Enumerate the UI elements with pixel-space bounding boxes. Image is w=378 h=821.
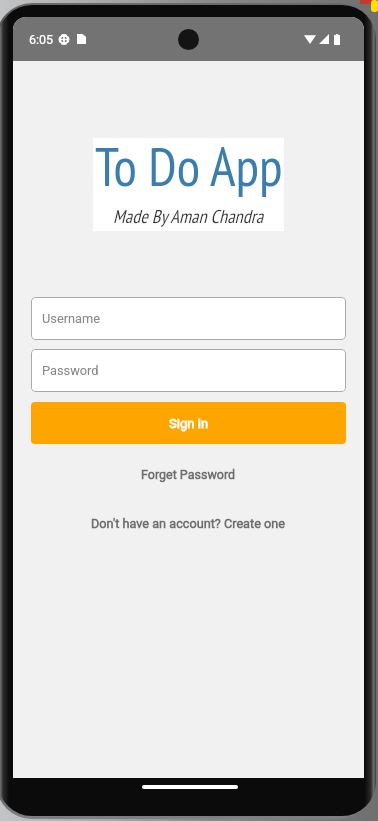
staticText: Password <box>42 363 99 378</box>
staticText: Made By Aman Chandra <box>113 204 264 228</box>
staticText: Username <box>42 311 101 326</box>
staticText: Don't have an account? Create one <box>91 516 286 531</box>
staticText: Forget Password <box>141 467 236 482</box>
staticText: To Do App <box>95 131 283 201</box>
staticText: 6:05 <box>29 32 54 47</box>
button[interactable]: Don't have an account? Create one <box>31 516 346 531</box>
button[interactable]: Password <box>31 349 346 392</box>
staticText: Sign In <box>169 416 209 431</box>
button[interactable]: Forget Password <box>31 467 346 482</box>
button[interactable]: Sign In <box>31 402 346 444</box>
button[interactable]: Username <box>31 297 346 340</box>
